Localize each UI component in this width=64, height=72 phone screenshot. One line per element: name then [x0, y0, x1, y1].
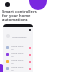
staticText: On	[11, 48, 14, 51]
button[interactable]: Automations	[3, 34, 33, 38]
button[interactable]: Logo	[5, 2, 10, 7]
button[interactable]: Living room	[3, 58, 33, 65]
button[interactable]: Living room	[3, 51, 33, 58]
staticText: Living room	[11, 59, 24, 62]
staticText: Automations	[12, 35, 27, 38]
staticText: On	[11, 55, 14, 58]
staticText: On	[11, 62, 14, 65]
staticText: Living room	[11, 45, 24, 48]
button[interactable]: Living room	[3, 44, 33, 51]
staticText: Living room	[11, 66, 24, 69]
button[interactable]: Living room	[3, 65, 33, 72]
staticText: Living room	[11, 52, 24, 55]
staticText: On	[11, 69, 14, 72]
staticText: Smart controllers for your home automati…	[2, 9, 37, 22]
